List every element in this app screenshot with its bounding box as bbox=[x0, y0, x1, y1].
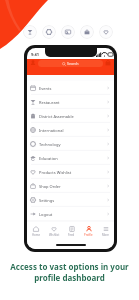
staticText: Feed bbox=[68, 233, 75, 237]
button[interactable]: Feed bbox=[63, 226, 80, 237]
button[interactable]: International bbox=[27, 123, 114, 137]
staticText: Logout bbox=[39, 212, 53, 217]
button[interactable]: Settings bbox=[42, 25, 56, 39]
staticText: Education bbox=[39, 156, 58, 161]
staticText: Settings bbox=[39, 198, 55, 203]
staticText: Events bbox=[39, 86, 52, 91]
staticText: Profile bbox=[84, 233, 93, 237]
button[interactable]: Search bbox=[38, 60, 103, 67]
staticText: Home bbox=[32, 233, 40, 237]
button[interactable]: Technology bbox=[27, 137, 114, 151]
button[interactable]: Events bbox=[27, 81, 114, 95]
button[interactable]: Photos bbox=[61, 25, 75, 39]
staticText: International bbox=[39, 128, 64, 133]
staticText: Technology bbox=[39, 142, 61, 147]
button[interactable]: Home bbox=[27, 226, 45, 237]
button[interactable]: Wishlist bbox=[45, 226, 63, 237]
button[interactable]: Favorites bbox=[99, 25, 113, 39]
button[interactable]: Profile bbox=[80, 226, 97, 237]
button[interactable]: Drinks bbox=[23, 25, 37, 39]
button[interactable]: Products Wishlist bbox=[27, 165, 114, 179]
staticText: 9:41 bbox=[31, 52, 39, 57]
button[interactable]: Bag bbox=[80, 25, 94, 39]
staticText: District Assemable bbox=[39, 114, 74, 119]
staticText: Wishlist bbox=[49, 233, 60, 237]
staticText: Products Wishlist bbox=[39, 170, 72, 175]
staticText: Search bbox=[67, 61, 79, 66]
button[interactable]: More bbox=[97, 226, 114, 237]
button[interactable]: Shop Order bbox=[27, 179, 114, 193]
staticText: Restaurant bbox=[39, 100, 60, 105]
button[interactable]: Cart bbox=[104, 59, 112, 67]
button[interactable]: Settings bbox=[27, 193, 114, 207]
button[interactable]: Education bbox=[27, 151, 114, 165]
staticText: More bbox=[102, 233, 109, 237]
button[interactable]: District Assemable bbox=[27, 109, 114, 123]
button[interactable]: Logout bbox=[27, 207, 114, 221]
staticText: Shop Order bbox=[39, 184, 61, 189]
staticText: Access to vast options in your profile d… bbox=[0, 261, 139, 283]
button[interactable]: Profile bbox=[29, 59, 37, 67]
button[interactable]: Restaurant bbox=[27, 95, 114, 109]
